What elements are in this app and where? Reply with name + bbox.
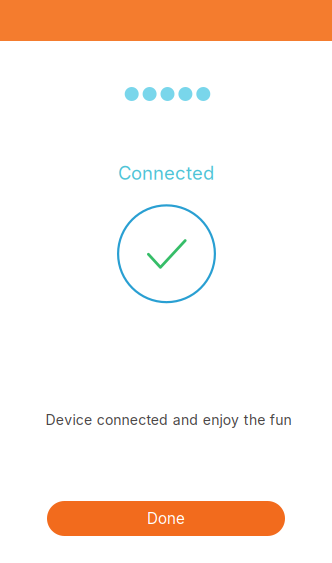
staticText: Connected [118,162,214,184]
button[interactable]: Done [47,501,285,536]
staticText: Done [147,509,185,528]
staticText: Device connected and enjoy the fun [46,412,291,428]
